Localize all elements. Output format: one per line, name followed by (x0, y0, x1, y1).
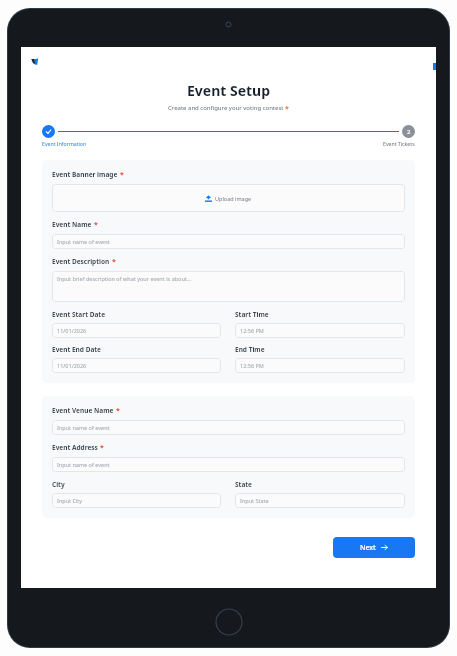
staticText: * (100, 443, 104, 453)
staticText: Event Start Date (52, 310, 106, 319)
staticText: Event Tickets (383, 140, 415, 147)
staticText: * (112, 257, 116, 267)
staticText: Create and configure your voting contest (168, 104, 284, 112)
staticText: Event Description (52, 257, 110, 266)
button[interactable]: Next (333, 537, 415, 558)
button[interactable]: Input name of event (52, 457, 405, 472)
staticText: Event Banner image (52, 170, 118, 179)
staticText: Next (360, 543, 376, 553)
button[interactable]: 12:56 PM (235, 358, 405, 373)
staticText: * (94, 220, 98, 230)
staticText: End Time (235, 345, 265, 354)
staticText: Event Venue Name (52, 406, 114, 415)
staticText: 11/01/2026 (57, 362, 87, 369)
staticText: Event Setup (21, 81, 436, 100)
button[interactable]: Input City (52, 493, 221, 508)
staticText: Event Address (52, 443, 98, 452)
other: App logo (29, 55, 43, 69)
button[interactable]: 12:56 PM (235, 323, 405, 338)
staticText: 12:56 PM (240, 327, 264, 334)
button[interactable]: Input brief description of what your eve… (52, 271, 405, 302)
staticText: Input name of event (57, 238, 110, 245)
button[interactable]: Input name of event (52, 420, 405, 435)
button[interactable]: Upload image (52, 184, 405, 212)
staticText: Input brief description of what your eve… (57, 275, 192, 282)
button[interactable]: 11/01/2026 (52, 323, 221, 338)
staticText: State (235, 480, 252, 489)
button[interactable]: 11/01/2026 (52, 358, 221, 373)
staticText: Input name of event (57, 461, 110, 468)
staticText: City (52, 480, 65, 489)
button[interactable]: Event Information (42, 125, 87, 147)
staticText: Input City (57, 497, 83, 504)
staticText: Upload image (215, 195, 252, 202)
staticText: * (116, 406, 120, 416)
button[interactable]: Home (215, 608, 243, 636)
staticText: Event End Date (52, 345, 101, 354)
staticText: Start Time (235, 310, 269, 319)
staticText: 11/01/2026 (57, 327, 87, 334)
staticText: 2 (407, 128, 411, 136)
staticText: Input State (240, 497, 269, 504)
button[interactable]: Input name of event (52, 234, 405, 249)
staticText: 12:56 PM (240, 362, 264, 369)
staticText: * (285, 104, 289, 114)
button[interactable]: 2 (383, 125, 415, 147)
staticText: * (120, 170, 124, 180)
staticText: Input name of event (57, 424, 110, 431)
staticText: Event Information (42, 140, 87, 147)
button[interactable]: Input State (235, 493, 405, 508)
staticText: Event Name (52, 220, 92, 229)
